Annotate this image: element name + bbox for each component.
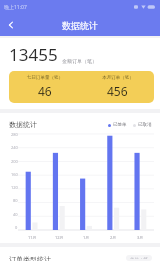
button[interactable]: 已取消 xyxy=(133,122,152,128)
staticText: 本月订单（笔） xyxy=(102,75,134,81)
button[interactable]: 七日订单量（笔） xyxy=(9,75,81,99)
staticText: 数据统计 xyxy=(9,120,37,129)
staticText: 2月 xyxy=(110,235,117,240)
staticText: 456 xyxy=(107,83,128,99)
button[interactable]: 已签单 xyxy=(108,122,127,128)
button[interactable]: 单位：笔 xyxy=(126,255,152,261)
staticText: 240 xyxy=(11,145,18,150)
staticText: 12月 xyxy=(55,235,64,240)
staticText: 46 xyxy=(38,83,52,99)
staticText: 13455 xyxy=(9,43,58,66)
staticText: 已签单 xyxy=(113,122,127,128)
staticText: 晚上11:07 xyxy=(4,4,27,11)
staticText: 80 xyxy=(13,198,18,203)
staticText: 七日订单量（笔） xyxy=(27,75,63,81)
staticText: 200 xyxy=(11,159,18,164)
button[interactable]: Back xyxy=(0,14,22,36)
staticText: 金额订单（笔） xyxy=(62,58,97,64)
staticText: 0 xyxy=(15,225,18,230)
staticText: 11月 xyxy=(28,235,37,240)
staticText: 160 xyxy=(11,172,18,177)
staticText: 3月 xyxy=(137,235,144,240)
staticText: 已取消 xyxy=(138,122,152,128)
staticText: 订单类型统计 xyxy=(9,255,51,261)
staticText: 280 xyxy=(11,132,18,137)
staticText: 40 xyxy=(13,212,18,217)
staticText: 120 xyxy=(11,185,18,190)
button[interactable]: 本月订单（笔） xyxy=(81,75,154,99)
staticText: 数据统计 xyxy=(62,20,98,31)
staticText: 1月 xyxy=(83,235,90,240)
staticText: 单位：笔 xyxy=(130,257,148,259)
